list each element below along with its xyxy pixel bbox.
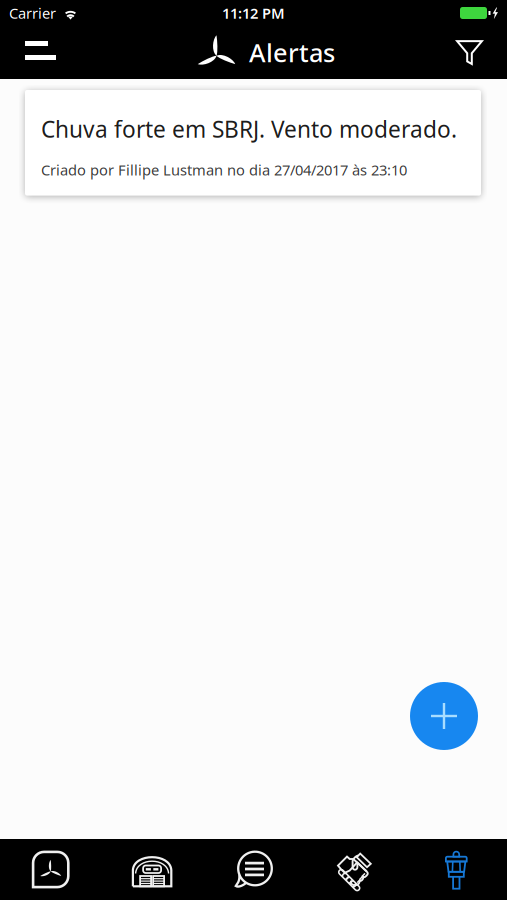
staticText: Criado por Fillipe Lustman no dia 27/04/…	[41, 160, 407, 180]
staticText: Chuva forte em SBRJ. Vento moderado.	[41, 114, 457, 144]
button[interactable]: Novo alerta	[410, 682, 478, 750]
staticText: Alertas	[249, 36, 335, 69]
button[interactable]: Aeronaves	[0, 839, 101, 900]
button[interactable]: Alertas	[406, 839, 507, 900]
button[interactable]: Filtrar	[429, 26, 507, 79]
button[interactable]: Chuva forte em SBRJ. Vento moderado.	[25, 90, 481, 196]
staticText: 11:12 PM	[222, 3, 285, 23]
staticText: Carrier	[9, 3, 56, 23]
button[interactable]: Menu	[0, 26, 81, 79]
button[interactable]: Hangares	[101, 839, 203, 900]
button[interactable]: Negócios	[304, 839, 406, 900]
button[interactable]: Mensagens	[203, 839, 304, 900]
